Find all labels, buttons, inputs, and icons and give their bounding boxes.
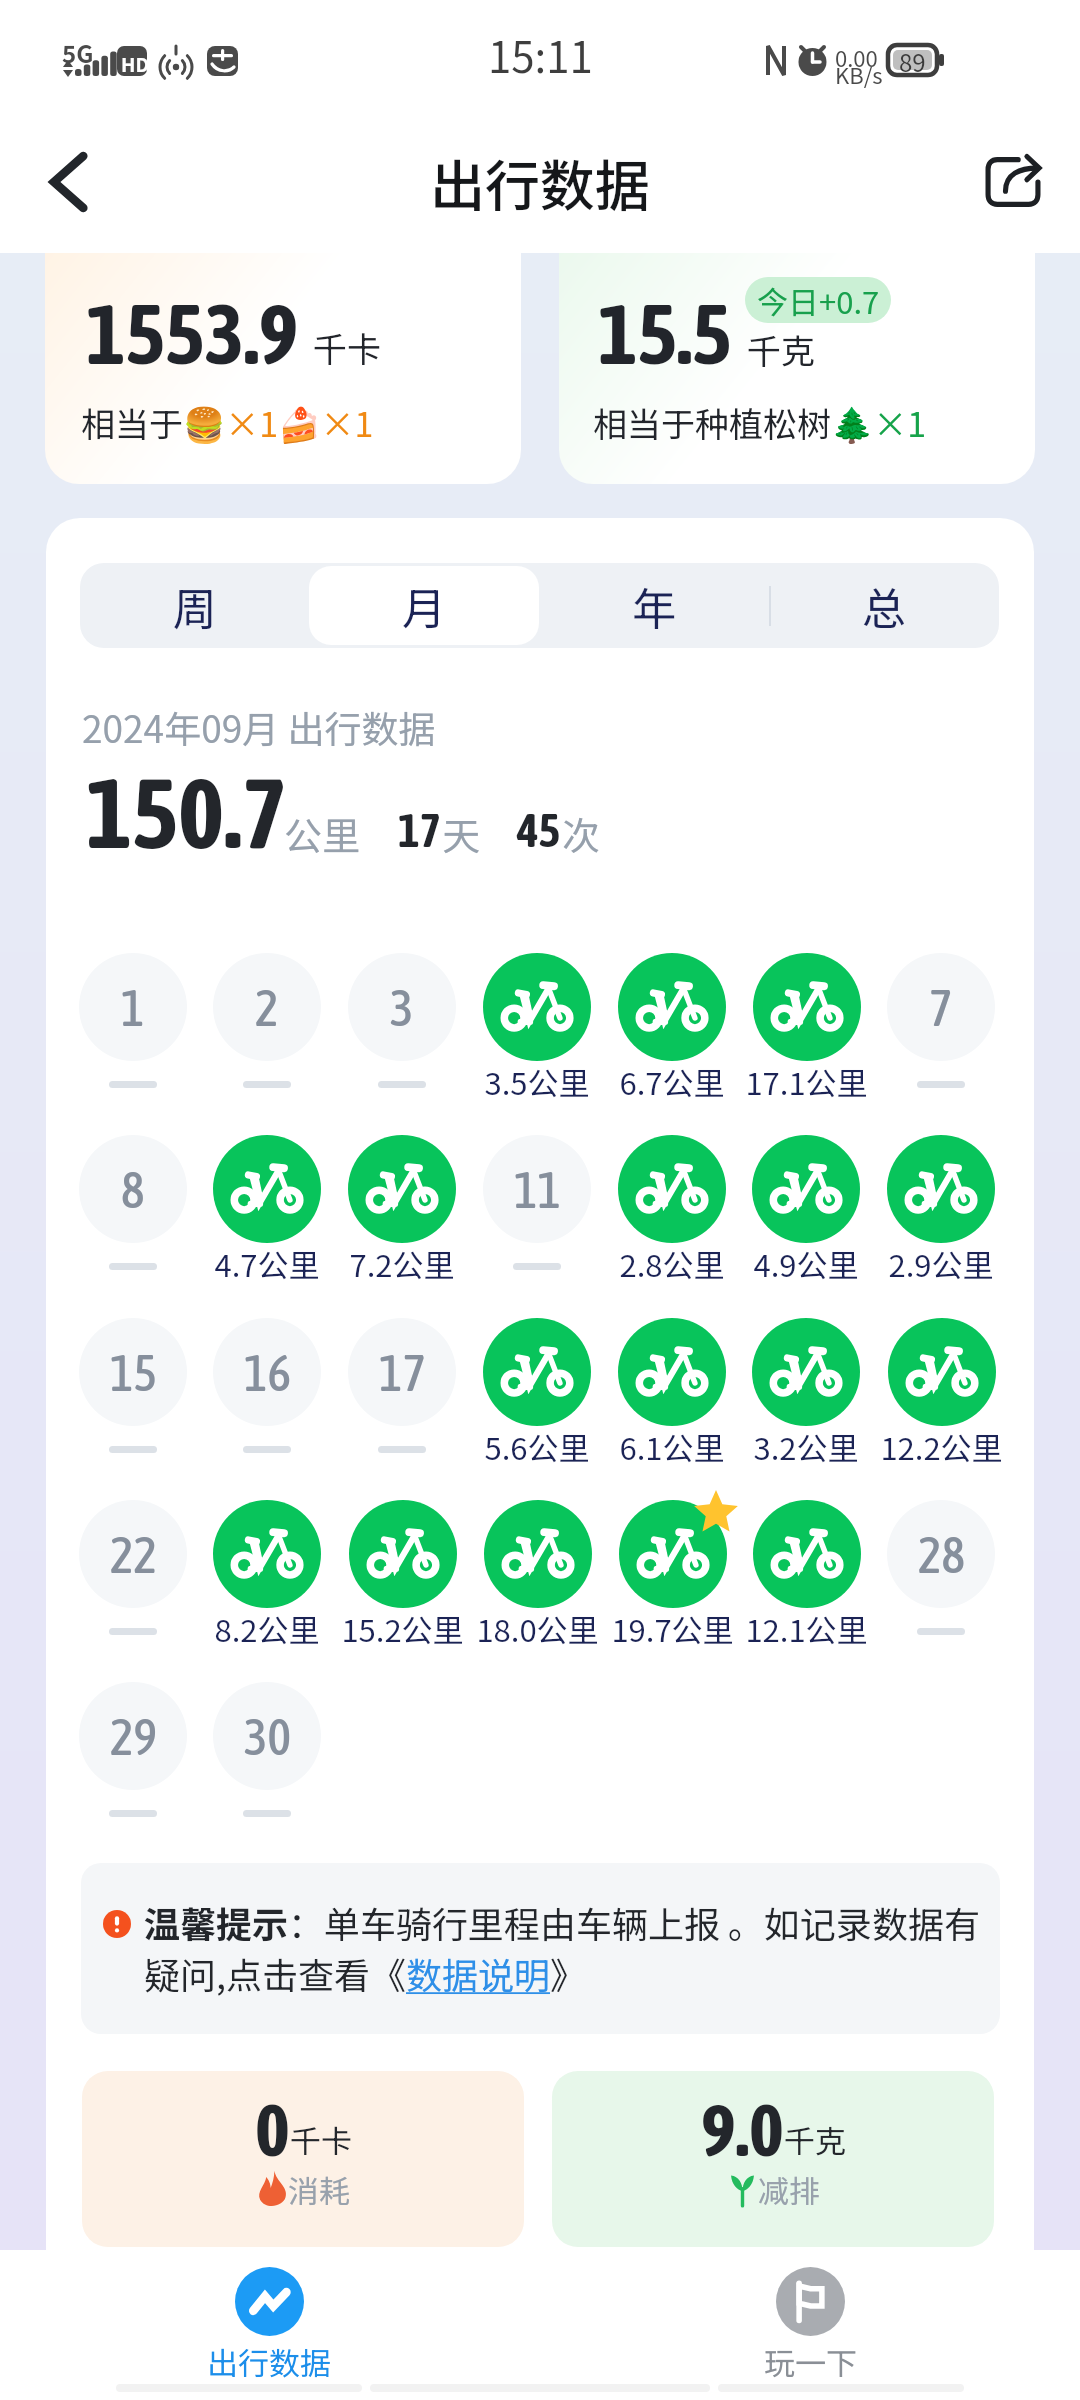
staticText: 17.1公里 bbox=[745, 1059, 868, 1104]
button[interactable]: 15 bbox=[65, 1318, 201, 1478]
button[interactable]: 总 bbox=[769, 563, 999, 648]
button[interactable]: 12.1公里 bbox=[738, 1500, 874, 1660]
button[interactable]: 18.0公里 bbox=[469, 1500, 605, 1660]
staticText: 出行数据 bbox=[430, 142, 651, 222]
staticText: HD bbox=[121, 50, 149, 78]
button[interactable]: 12.2公里 bbox=[873, 1318, 1009, 1478]
button[interactable]: 4.9公里 bbox=[738, 1135, 874, 1295]
staticText: 6.1公里 bbox=[619, 1424, 725, 1469]
button[interactable]: 15.2公里 bbox=[334, 1500, 470, 1660]
staticText: 28 bbox=[918, 1526, 965, 1583]
staticText: 3.2公里 bbox=[753, 1424, 859, 1469]
button[interactable]: 17 bbox=[334, 1318, 470, 1478]
staticText: 温馨提示：单车骑行里程由车辆上报 。如记录数据有疑问,点击查看《数据说明》 bbox=[144, 1896, 986, 1999]
staticText: 12.1公里 bbox=[745, 1606, 868, 1651]
staticText: 玩一下 bbox=[764, 2339, 857, 2384]
button[interactable]: 30 bbox=[199, 1682, 335, 1842]
staticText: 17 bbox=[379, 1344, 426, 1401]
staticText: 15.2公里 bbox=[341, 1606, 464, 1651]
button[interactable]: 1553.9 bbox=[45, 246, 521, 484]
button[interactable]: 6.1公里 bbox=[604, 1318, 740, 1478]
button[interactable]: 3.5公里 bbox=[469, 953, 605, 1113]
staticText: 消耗 bbox=[288, 2167, 350, 2212]
staticText: 年 bbox=[632, 574, 676, 638]
staticText: 22 bbox=[110, 1526, 157, 1583]
button[interactable]: Back bbox=[26, 133, 124, 231]
staticText: 4.9公里 bbox=[753, 1241, 859, 1286]
staticText: 7 bbox=[929, 979, 953, 1036]
staticText: 相当于种植松树🌲×1 bbox=[593, 398, 927, 447]
staticText: 2 bbox=[255, 979, 279, 1036]
button[interactable]: 16 bbox=[199, 1318, 335, 1478]
staticText: 周 bbox=[173, 574, 217, 638]
button[interactable]: 7.2公里 bbox=[334, 1135, 470, 1295]
button[interactable]: 1 bbox=[65, 953, 201, 1113]
staticText: 相当于🍔×1🍰×1 bbox=[81, 398, 374, 447]
staticText: 月 bbox=[402, 574, 446, 638]
staticText: 3.5公里 bbox=[484, 1059, 590, 1104]
button[interactable]: 7 bbox=[873, 953, 1009, 1113]
button[interactable]: 5.6公里 bbox=[469, 1318, 605, 1478]
button[interactable]: 周 bbox=[80, 563, 309, 648]
staticText: 3 bbox=[390, 979, 414, 1036]
staticText: 1 bbox=[121, 979, 145, 1036]
staticText: 8.2公里 bbox=[214, 1606, 320, 1651]
button[interactable]: Share bbox=[984, 153, 1042, 211]
button[interactable]: 22 bbox=[65, 1500, 201, 1660]
staticText: 9.0 bbox=[701, 2087, 784, 2172]
staticText: 18.0公里 bbox=[476, 1606, 599, 1651]
button[interactable]: 17.1公里 bbox=[738, 953, 874, 1113]
button[interactable]: 4.7公里 bbox=[199, 1135, 335, 1295]
button[interactable]: 2 bbox=[199, 953, 335, 1113]
button[interactable]: 2.8公里 bbox=[604, 1135, 740, 1295]
staticText: 15:11 bbox=[488, 24, 593, 85]
staticText: 8 bbox=[121, 1161, 145, 1218]
staticText: 出行数据 bbox=[207, 2339, 331, 2384]
staticText: 19.7公里 bbox=[611, 1606, 734, 1651]
staticText: 天 bbox=[442, 806, 481, 861]
button[interactable]: 15.5 bbox=[559, 246, 1035, 484]
staticText: 1553.9 bbox=[86, 286, 299, 382]
staticText: 30 bbox=[244, 1708, 291, 1765]
button[interactable]: 2.9公里 bbox=[873, 1135, 1009, 1295]
button[interactable]: 6.7公里 bbox=[604, 953, 740, 1113]
staticText: 0 bbox=[255, 2087, 290, 2172]
staticText: 总 bbox=[862, 574, 906, 638]
button[interactable]: 8 bbox=[65, 1135, 201, 1295]
staticText: 5G bbox=[62, 35, 94, 70]
staticText: 7.2公里 bbox=[349, 1241, 455, 1286]
staticText: 千卡 bbox=[313, 323, 381, 372]
button[interactable]: 年 bbox=[539, 563, 769, 648]
staticText: 6.7公里 bbox=[619, 1059, 725, 1104]
button[interactable]: 11 bbox=[469, 1135, 605, 1295]
staticText: KB/s bbox=[835, 58, 883, 90]
staticText: 2.9公里 bbox=[888, 1241, 994, 1286]
staticText: 11 bbox=[514, 1161, 561, 1218]
staticText: 千克 bbox=[747, 325, 815, 374]
staticText: 减排 bbox=[758, 2167, 820, 2212]
button[interactable]: 3 bbox=[334, 953, 470, 1113]
staticText: 2024年09月 出行数据 bbox=[82, 700, 436, 754]
staticText: 4.7公里 bbox=[214, 1241, 320, 1286]
staticText: 12.2公里 bbox=[880, 1424, 1003, 1469]
staticText: 今日+0.7 bbox=[757, 278, 880, 323]
staticText: 16 bbox=[244, 1344, 291, 1401]
staticText: 17 bbox=[398, 804, 442, 857]
button[interactable]: 29 bbox=[65, 1682, 201, 1842]
button[interactable]: 玩一下 bbox=[700, 2258, 920, 2393]
staticText: 15.5 bbox=[598, 286, 732, 382]
button[interactable]: 3.2公里 bbox=[738, 1318, 874, 1478]
button[interactable]: 19.7公里 bbox=[604, 1500, 740, 1660]
staticText: 89 bbox=[899, 44, 926, 79]
button[interactable]: 0 bbox=[82, 2071, 524, 2247]
staticText: 2.8公里 bbox=[619, 1241, 725, 1286]
button[interactable]: 28 bbox=[873, 1500, 1009, 1660]
button[interactable]: 月 bbox=[309, 563, 539, 648]
staticText: 45 bbox=[517, 804, 561, 857]
button[interactable]: 9.0 bbox=[552, 2071, 994, 2247]
staticText: 0.00 bbox=[835, 41, 878, 73]
staticText: 千卡 bbox=[290, 2117, 352, 2162]
button[interactable]: 8.2公里 bbox=[199, 1500, 335, 1660]
staticText: 5.6公里 bbox=[484, 1424, 590, 1469]
button[interactable]: 出行数据 bbox=[159, 2258, 379, 2393]
